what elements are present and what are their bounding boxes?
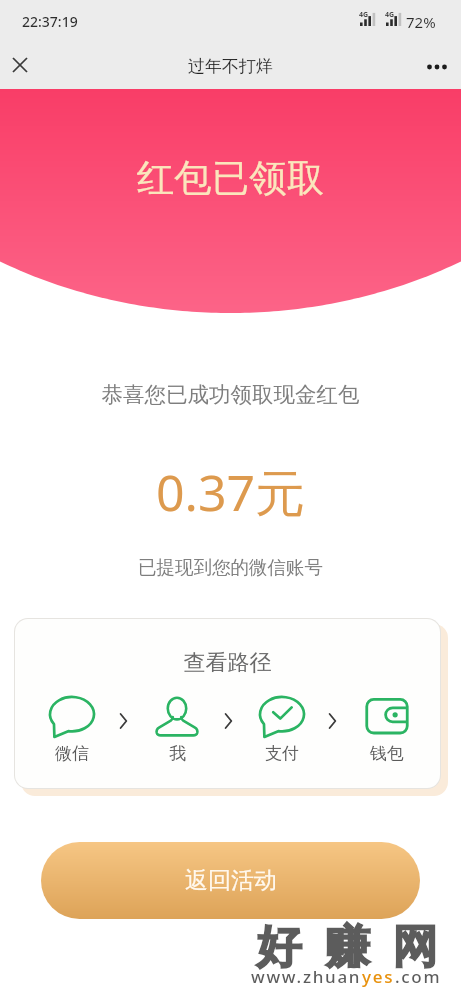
button[interactable]: Close: [0, 44, 42, 89]
button[interactable]: 支付: [246, 697, 318, 764]
button[interactable]: 我: [141, 697, 213, 764]
staticText: www.zhuan: [251, 965, 362, 988]
button[interactable]: 微信: [36, 697, 108, 764]
staticText: 过年不打烊: [188, 56, 273, 77]
button[interactable]: More options: [416, 44, 461, 89]
staticText: 支付: [265, 743, 299, 764]
staticText: 返回活动: [185, 866, 277, 895]
staticText: 已提现到您的微信账号: [0, 556, 461, 579]
staticText: 微信: [55, 743, 89, 764]
staticText: 红包已领取: [0, 155, 461, 202]
staticText: .com: [395, 965, 442, 988]
staticText: 4G: [359, 10, 369, 20]
button[interactable]: 返回活动: [41, 842, 420, 919]
staticText: 查看路径: [15, 649, 440, 677]
staticText: 22:37:19: [22, 12, 78, 31]
staticText: 好赚网: [245, 919, 449, 976]
staticText: 4G: [385, 10, 395, 20]
staticText: 我: [169, 743, 186, 764]
staticText: yes: [362, 965, 395, 988]
staticText: 0.37元: [0, 458, 461, 526]
staticText: 72%: [406, 12, 436, 32]
button[interactable]: 查看路径: [15, 619, 440, 788]
staticText: 钱包: [370, 743, 404, 764]
staticText: 恭喜您已成功领取现金红包: [0, 381, 461, 408]
button[interactable]: 钱包: [351, 697, 423, 764]
